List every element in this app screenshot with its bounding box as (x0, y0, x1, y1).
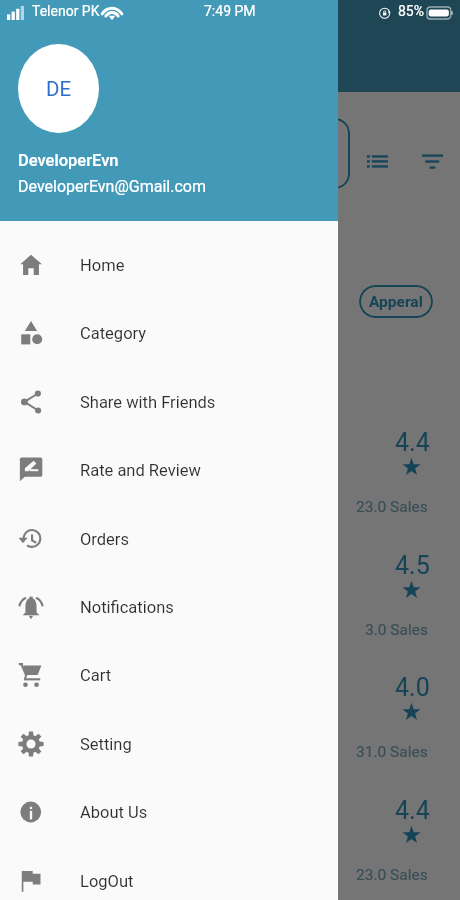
staticText: Orders (80, 530, 129, 549)
staticText: Cart (80, 666, 112, 685)
staticText: Home (80, 256, 125, 275)
staticText: Setting (80, 735, 132, 754)
button[interactable]: Rate and Review (0, 436, 338, 504)
staticText: About Us (80, 803, 148, 822)
button[interactable]: Setting (0, 710, 338, 778)
staticText: Category (80, 324, 147, 343)
staticText: Share with Friends (80, 393, 216, 412)
staticText: 31.0 Sales (356, 743, 428, 761)
button[interactable]: LogOut (0, 847, 338, 900)
staticText: Apperal (369, 293, 423, 311)
staticText: 23.0 Sales (356, 866, 428, 884)
staticText: 7:49 PM (204, 3, 256, 19)
button[interactable]: Category (0, 299, 338, 367)
staticText: 4.4 (395, 428, 430, 457)
button[interactable]: List view (359, 143, 396, 180)
staticText: 23.0 Sales (356, 498, 428, 516)
staticText: 85% (398, 3, 424, 19)
staticText: DeveloperEvn (18, 151, 119, 170)
staticText: Rate and Review (80, 461, 201, 480)
button[interactable]: Filter (414, 143, 451, 180)
button[interactable]: About Us (0, 778, 338, 846)
button[interactable]: Notifications (0, 573, 338, 641)
staticText: 4.5 (395, 551, 430, 580)
staticText: 3.0 Sales (365, 621, 428, 639)
button[interactable]: Share with Friends (0, 368, 338, 436)
staticText: 4.4 (395, 796, 430, 825)
button[interactable]: DE (18, 44, 99, 133)
staticText: DE (46, 77, 72, 101)
button[interactable]: Cart (0, 641, 338, 709)
staticText: Notifications (80, 598, 174, 617)
button[interactable] (18, 118, 350, 189)
button[interactable]: Home (0, 231, 338, 299)
staticText: DeveloperEvn@Gmail.com (18, 177, 206, 196)
button[interactable]: Apperal (359, 285, 433, 318)
button[interactable]: Orders (0, 505, 338, 573)
staticText: Telenor PK (32, 3, 100, 19)
staticText: LogOut (80, 872, 134, 891)
staticText: 4.0 (395, 673, 430, 702)
